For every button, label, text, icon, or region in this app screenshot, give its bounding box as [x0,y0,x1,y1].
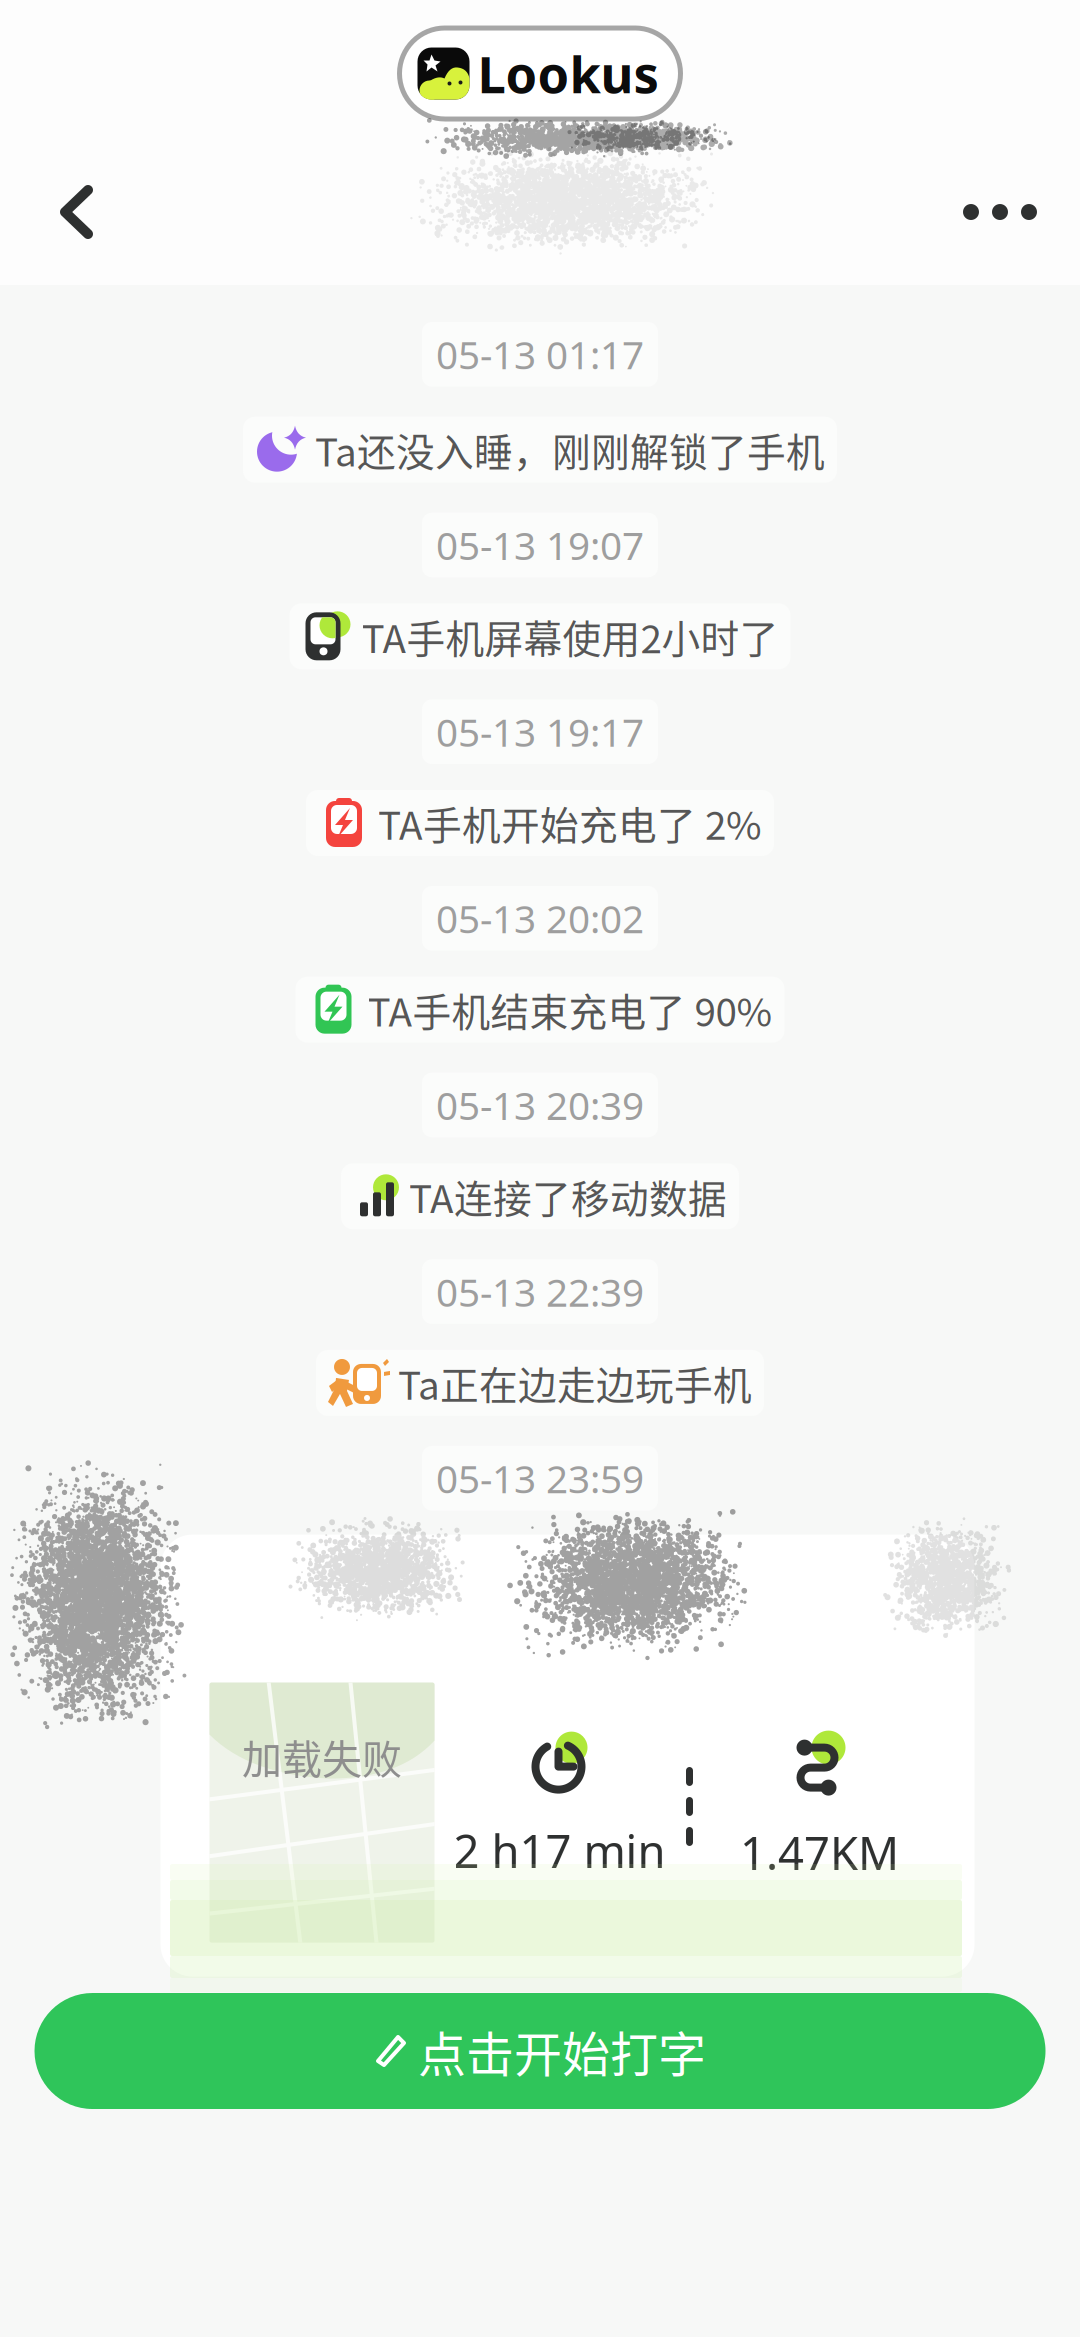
staticText: Lookus [477,39,658,108]
staticText: 05-13 19:17 [436,705,644,758]
staticText: Ta正在边走边玩手机 [398,1355,752,1411]
staticText: 05-13 19:07 [436,519,644,571]
staticText: TA连接了移动数据 [409,1168,727,1224]
button[interactable]: More [933,161,1080,263]
staticText: TA手机开始充电了 2% [378,795,762,851]
staticText: TA手机结束充电了 90% [367,982,772,1038]
staticText: 05-13 23:59 [436,1452,644,1505]
staticText: 05-13 22:39 [436,1265,644,1318]
staticText: 1.47KM [740,1822,899,1883]
button[interactable]: 点击开始打字 [34,1993,1045,2109]
staticText: Ta还没入睡，刚刚解锁了手机 [315,422,825,478]
button[interactable]: Back [0,161,128,263]
staticText: 加载失败 [242,1728,402,1786]
staticText: 点击开始打字 [418,2016,706,2086]
staticText: 05-13 20:02 [436,892,644,945]
staticText: 05-13 01:17 [436,328,644,381]
staticText: TA手机屏幕使用2小时了 [361,608,778,664]
staticText: 2 h17 min [453,1820,665,1881]
staticText: 05-13 20:39 [436,1079,644,1131]
